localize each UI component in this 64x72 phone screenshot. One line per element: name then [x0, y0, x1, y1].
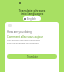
staticText: Translate phrases into languages: [2, 9, 62, 16]
staticText: This phrase has been translated into the…: [7, 39, 40, 44]
staticText: Translate: [27, 55, 38, 58]
button[interactable]: English: [23, 16, 41, 21]
staticText: How are you doing: [7, 30, 32, 34]
staticText: Comment allez-vous aujour: [7, 35, 44, 39]
staticText: English: [27, 17, 36, 21]
button[interactable]: Translate: [7, 54, 57, 59]
button[interactable]: Swap languages: [8, 24, 12, 27]
